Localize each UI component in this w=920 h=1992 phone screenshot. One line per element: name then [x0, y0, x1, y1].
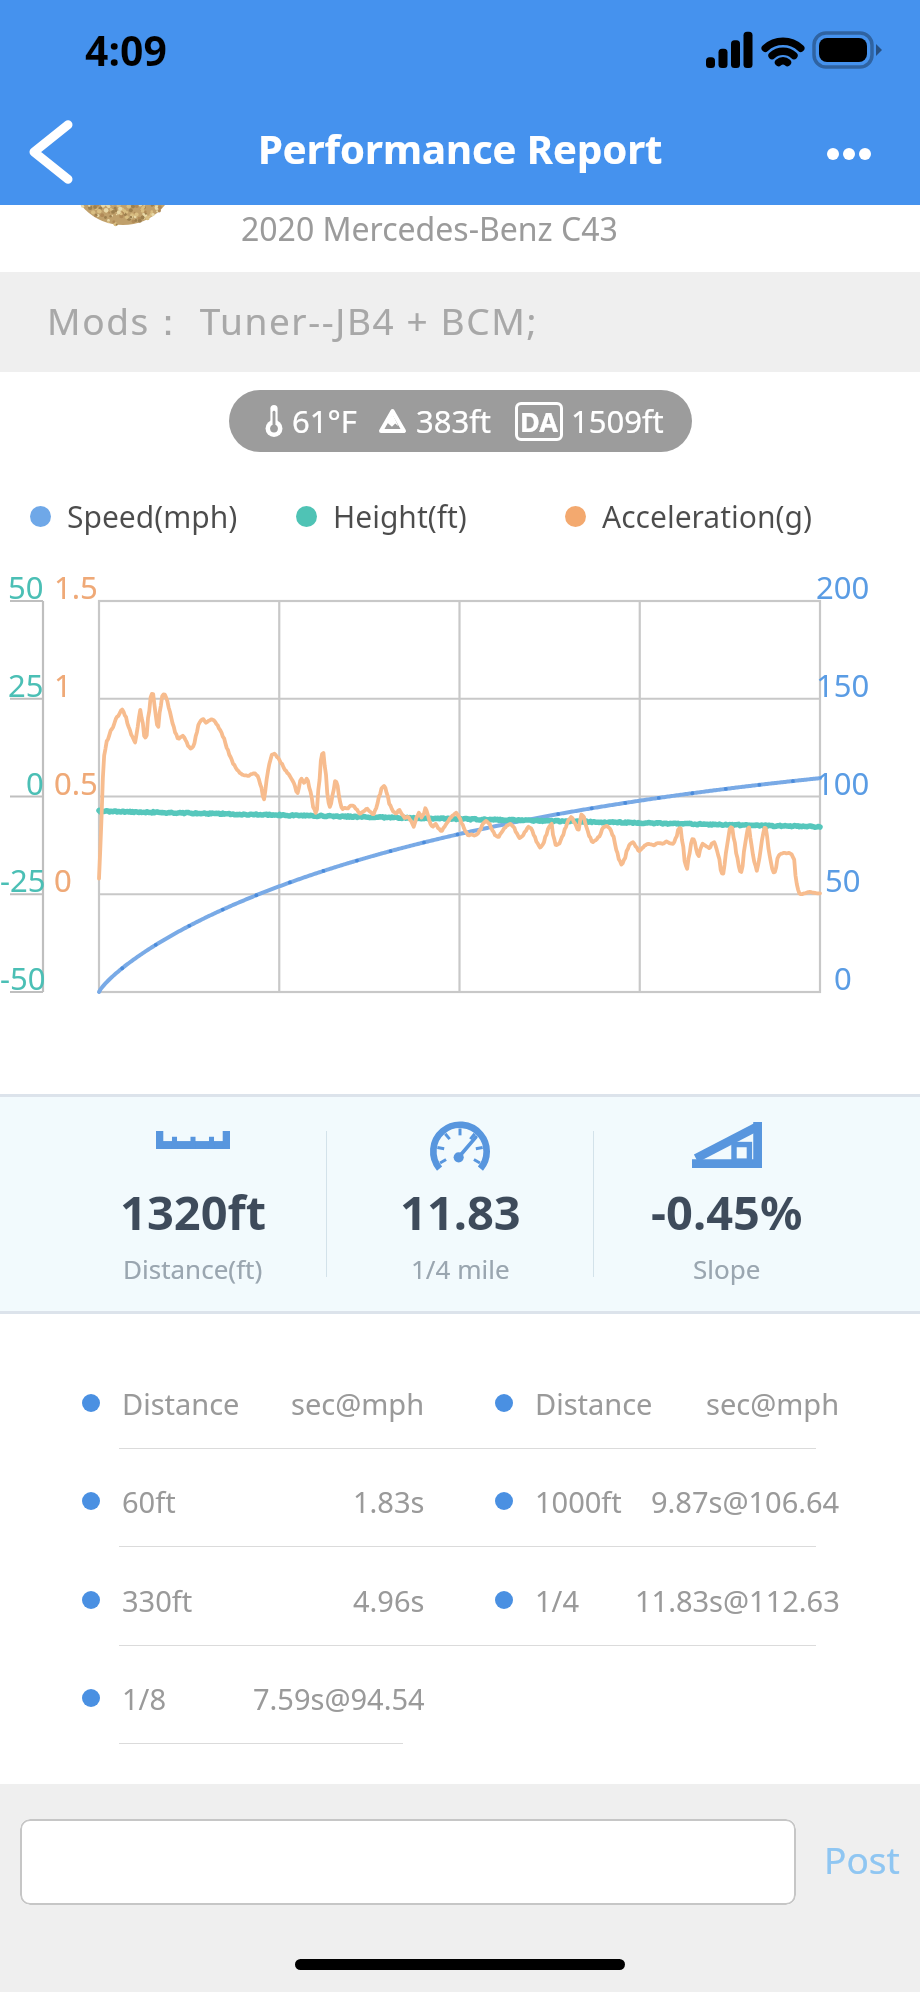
button[interactable]: 1000ft — [495, 1471, 840, 1531]
button[interactable]: 60ft — [82, 1471, 425, 1531]
staticText: 150 — [816, 664, 870, 706]
staticText: Height(ft) — [333, 496, 467, 537]
staticText: sec@mph — [706, 1384, 840, 1423]
staticText: 4.96s — [353, 1581, 425, 1620]
staticText: Acceleration(g) — [602, 496, 812, 537]
staticText: Distance(ft) — [123, 1251, 263, 1286]
staticText: Performance Report — [258, 121, 663, 175]
staticText: Mods： Tuner--JB4 + BCM; — [47, 295, 538, 346]
staticText: Performance Report — [258, 121, 663, 175]
staticText: 61°F — [292, 400, 357, 442]
staticText: 50 — [8, 566, 44, 608]
staticText: 4:09 — [85, 22, 167, 78]
staticText: 1.83s — [353, 1482, 425, 1521]
staticText: 1320ft — [120, 1180, 267, 1244]
staticText: 1/4 — [535, 1581, 579, 1620]
staticText: 1509ft — [571, 400, 664, 442]
staticText: 4:09 — [85, 22, 167, 78]
staticText: 11.83 — [400, 1180, 521, 1244]
staticText: 25 — [8, 664, 44, 706]
staticText: 60ft — [122, 1482, 176, 1521]
staticText: 50 — [825, 859, 861, 901]
staticText: -50 — [0, 957, 44, 999]
button[interactable] — [20, 1819, 796, 1905]
staticText: 383ft — [416, 400, 492, 442]
staticText: 1 — [54, 664, 72, 706]
staticText: Post — [824, 1834, 900, 1884]
button[interactable]: Back — [18, 112, 84, 192]
staticText: 0 — [26, 762, 44, 804]
button[interactable]: Distance — [82, 1373, 425, 1433]
button[interactable]: More options — [821, 127, 879, 177]
staticText: 2020 Mercedes-Benz C43 — [241, 207, 618, 251]
staticText: Distance — [122, 1384, 240, 1423]
button[interactable]: 330ft — [82, 1570, 425, 1630]
staticText: 330ft — [122, 1581, 193, 1620]
staticText: Speed(mph) — [67, 496, 238, 537]
staticText: -25 — [0, 859, 44, 901]
button[interactable]: 1/8 — [82, 1668, 425, 1728]
button[interactable]: 1/4 — [495, 1570, 840, 1630]
button[interactable]: Post — [812, 1826, 912, 1892]
staticText: 1.5 — [54, 566, 98, 608]
button[interactable]: Back — [18, 112, 84, 192]
staticText: 0 — [834, 957, 852, 999]
staticText: 0 — [54, 859, 72, 901]
staticText: 1/4 mile — [411, 1251, 510, 1286]
staticText: DA — [520, 403, 558, 440]
staticText: 11.83s@112.63 — [635, 1581, 840, 1620]
staticText: Distance — [535, 1384, 653, 1423]
staticText: 1000ft — [535, 1482, 622, 1521]
staticText: sec@mph — [291, 1384, 425, 1423]
staticText: 1/8 — [122, 1679, 166, 1718]
staticText: 0.5 — [54, 762, 98, 804]
staticText: 7.59s@94.54 — [253, 1679, 425, 1718]
staticText: 100 — [816, 762, 870, 804]
staticText: 9.87s@106.64 — [651, 1482, 840, 1521]
staticText: 200 — [816, 566, 870, 608]
staticText: Slope — [693, 1251, 761, 1286]
staticText: -0.45% — [651, 1180, 803, 1244]
button[interactable]: More options — [821, 127, 879, 177]
button[interactable]: Distance — [495, 1373, 840, 1433]
